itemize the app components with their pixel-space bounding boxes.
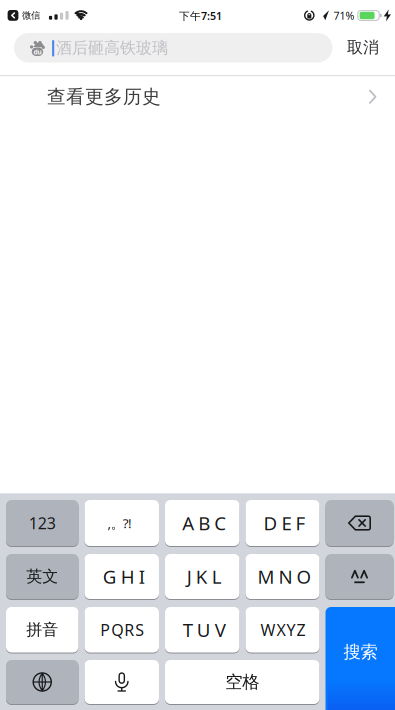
staticText: 拼音 (26, 620, 58, 640)
button[interactable]: WXYZ (245, 606, 319, 653)
staticText: DEF (263, 511, 305, 535)
staticText: PQRS (100, 619, 144, 640)
button[interactable]: 下一个键盘 (6, 659, 78, 704)
button[interactable]: 英文 (6, 553, 78, 599)
staticText: 71% (333, 8, 354, 23)
button[interactable]: JKL (165, 553, 239, 599)
staticText: 搜索 (343, 641, 377, 663)
staticText: GHI (103, 564, 145, 589)
button[interactable]: 123 (6, 499, 78, 546)
button[interactable]: 删除 (325, 499, 393, 546)
staticText: 英文 (26, 567, 58, 586)
staticText: JKL (187, 564, 222, 589)
button[interactable]: 听写 (84, 659, 159, 704)
button[interactable]: PQRS (84, 606, 159, 653)
button[interactable]: ABC (165, 499, 239, 546)
button[interactable]: 返回微信 (8, 10, 40, 21)
button[interactable]: ,。?! (84, 499, 159, 546)
staticText: ,。?! (107, 514, 132, 532)
staticText: du (33, 47, 41, 56)
button[interactable]: 查看更多历史 (0, 76, 395, 117)
button[interactable]: 表情 (325, 553, 393, 599)
staticText: 酒后砸高铁玻璃 (56, 38, 168, 58)
button[interactable]: MNO (245, 553, 319, 599)
staticText: ABC (182, 511, 226, 535)
staticText: 微信 (22, 10, 40, 21)
staticText: WXYZ (260, 619, 305, 640)
button[interactable]: 空格 (165, 659, 319, 704)
button[interactable]: DEF (245, 499, 319, 546)
staticText: 下午7:51 (179, 9, 222, 23)
button[interactable]: 取消 (332, 32, 394, 62)
button[interactable]: TUV (165, 606, 239, 653)
button[interactable]: 搜索 (14, 33, 332, 62)
staticText: 空格 (225, 671, 259, 693)
staticText: TUV (183, 617, 226, 642)
button[interactable]: 搜索 (325, 607, 395, 710)
staticText: 123 (29, 512, 56, 534)
staticText: 取消 (347, 38, 379, 57)
staticText: 查看更多历史 (47, 85, 161, 108)
button[interactable]: 拼音 (6, 606, 78, 653)
staticText: MNO (257, 564, 311, 589)
button[interactable]: GHI (84, 553, 159, 599)
